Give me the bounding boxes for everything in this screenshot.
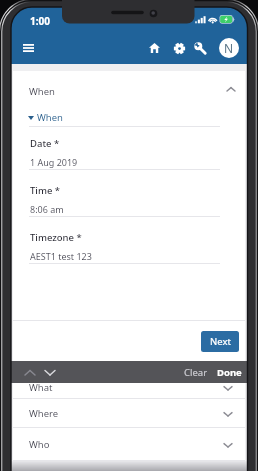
button[interactable]: What <box>13 376 245 399</box>
staticText: 1 Aug 2019 <box>30 156 78 168</box>
staticText: AEST1 test 123 <box>30 250 92 262</box>
staticText: When <box>29 85 55 98</box>
button[interactable]: Next <box>201 331 239 352</box>
staticText: Clear <box>184 366 208 379</box>
button[interactable]: Who <box>13 428 245 461</box>
staticText: Next <box>210 335 231 348</box>
button[interactable]: Collapse When <box>221 79 241 99</box>
button[interactable]: Tools <box>190 38 210 58</box>
staticText: When <box>37 111 63 124</box>
button[interactable]: Clear <box>181 361 211 383</box>
staticText: Where <box>29 407 59 420</box>
staticText: N <box>224 40 234 56</box>
button[interactable]: Settings <box>169 38 189 58</box>
button[interactable]: Where <box>13 399 245 428</box>
staticText: Timezone * <box>30 231 82 244</box>
staticText: Who <box>29 438 50 451</box>
button[interactable]: Profile <box>219 38 239 58</box>
staticText: Time * <box>30 184 61 197</box>
button[interactable]: Previous field <box>22 364 38 380</box>
button[interactable]: Done <box>214 361 245 383</box>
staticText: Date * <box>30 137 60 150</box>
button[interactable]: When <box>28 111 63 124</box>
staticText: 1:00 <box>30 14 50 28</box>
staticText: What <box>29 381 53 394</box>
button[interactable]: Next field <box>42 364 58 380</box>
button[interactable]: Home <box>144 38 164 58</box>
staticText: Done <box>217 366 242 379</box>
button[interactable]: Menu <box>18 38 38 58</box>
staticText: 8:06 am <box>30 203 64 215</box>
